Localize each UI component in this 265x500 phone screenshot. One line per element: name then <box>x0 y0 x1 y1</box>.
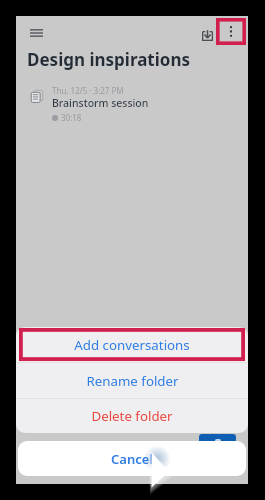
staticText: Delete folder <box>91 407 173 425</box>
button[interactable]: Cancel <box>18 441 246 476</box>
button[interactable]: Download <box>194 22 220 48</box>
button[interactable]: Thu, 12/5 · 3:27 PM <box>16 74 248 132</box>
staticText: Thu, 12/5 · 3:27 PM <box>52 85 124 96</box>
staticText: Brainstorm session <box>52 96 149 110</box>
staticText: Add conversations <box>74 336 190 354</box>
staticText: Design inspirations <box>27 48 191 71</box>
button[interactable]: Navigation menu <box>22 19 50 47</box>
button[interactable]: Delete folder <box>16 399 248 433</box>
button[interactable]: Add conversations <box>16 327 248 362</box>
staticText: Rename folder <box>86 372 179 390</box>
staticText: Cancel <box>111 450 154 468</box>
button[interactable]: More options <box>216 18 246 45</box>
staticText: 30:18 <box>61 112 82 123</box>
button[interactable]: Rename folder <box>16 363 248 398</box>
